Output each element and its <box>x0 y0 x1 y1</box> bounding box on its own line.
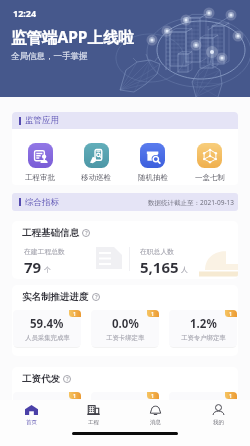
staticText: 工程 <box>88 419 99 426</box>
staticText: 全局信息，一手掌握 <box>11 51 88 62</box>
staticText: 12:24 <box>13 7 37 19</box>
staticText: 0.0% <box>112 316 139 332</box>
staticText: 在建工程总数 <box>24 247 65 256</box>
staticText: 综合指标 <box>25 197 59 208</box>
button[interactable]: 59.4% <box>13 310 81 347</box>
button[interactable]: 随机抽检 <box>124 143 181 182</box>
staticText: 监管应用 <box>25 115 59 126</box>
button[interactable]: 0 <box>13 392 81 429</box>
staticText: 人 <box>181 265 188 274</box>
staticText: 工资卡绑定率 <box>106 334 145 342</box>
staticText: 1 <box>73 392 77 399</box>
staticText: 在职总人数 <box>140 247 174 256</box>
staticText: 1 <box>73 310 77 317</box>
staticText: 随机抽检 <box>138 173 168 182</box>
staticText: 监管端APP上线啦 <box>11 26 134 47</box>
staticText: 工资代发人次 <box>28 416 67 424</box>
button[interactable]: 我的 <box>187 405 250 426</box>
staticText: 消息 <box>150 419 161 426</box>
staticText: 代发覆盖率 <box>187 416 219 424</box>
staticText: 首页 <box>26 419 37 426</box>
staticText: 0.0% <box>190 398 217 414</box>
staticText: 工资代发 <box>22 373 60 385</box>
staticText: 工程审批 <box>25 173 55 182</box>
staticText: ? <box>85 229 88 237</box>
button[interactable]: 0.0% <box>169 392 237 429</box>
staticText: 1 <box>151 392 155 399</box>
staticText: 59.4% <box>30 316 64 332</box>
staticText: 数据统计截止至：2021-09-13 <box>148 198 234 207</box>
staticText: ? <box>66 375 69 383</box>
button[interactable]: 消息 <box>124 405 187 426</box>
staticText: ? <box>95 293 98 301</box>
button[interactable]: 移动巡检 <box>68 143 124 182</box>
button[interactable]: 首页 <box>0 405 62 426</box>
button[interactable]: 一盒七制 <box>181 143 238 182</box>
button[interactable]: 工程 <box>62 405 124 426</box>
staticText: 实名制推进进度 <box>22 291 89 303</box>
staticText: 79 <box>24 257 42 277</box>
staticText: 我的 <box>213 419 224 426</box>
button[interactable]: 0.0% <box>91 310 159 347</box>
staticText: 工程基础信息 <box>22 227 79 239</box>
staticText: 1 <box>151 310 155 317</box>
staticText: 5,165 <box>140 257 179 277</box>
staticText: 1 <box>229 310 233 317</box>
staticText: 工资专户绑定率 <box>181 334 226 342</box>
staticText: 移动巡检 <box>81 173 111 182</box>
staticText: 1.2% <box>190 316 217 332</box>
staticText: 个 <box>44 265 51 274</box>
staticText: 一盒七制 <box>195 173 225 182</box>
staticText: 人员采集完成率 <box>25 334 70 342</box>
button[interactable]: 0 <box>91 392 159 429</box>
button[interactable]: 1.2% <box>169 310 237 347</box>
button[interactable]: 工程审批 <box>12 143 68 182</box>
staticText: 1 <box>229 392 233 399</box>
